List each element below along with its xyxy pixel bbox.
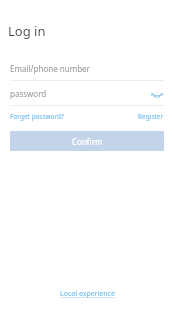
button[interactable]: password bbox=[10, 85, 164, 102]
staticText: password bbox=[10, 88, 150, 99]
button[interactable]: Show password bbox=[150, 88, 164, 100]
staticText: Log in bbox=[8, 22, 46, 40]
button[interactable]: Register bbox=[138, 111, 164, 122]
button[interactable]: Local experience bbox=[56, 287, 119, 301]
staticText: Register bbox=[138, 112, 164, 121]
button[interactable]: Email/phone number bbox=[10, 60, 164, 81]
button[interactable]: Forget password? bbox=[10, 111, 64, 122]
staticText: Email/phone number bbox=[10, 63, 90, 74]
button[interactable]: Confirm bbox=[10, 131, 164, 151]
staticText: Forget password? bbox=[10, 112, 64, 121]
staticText: Confirm bbox=[72, 136, 103, 147]
staticText: Local experience bbox=[60, 289, 115, 299]
